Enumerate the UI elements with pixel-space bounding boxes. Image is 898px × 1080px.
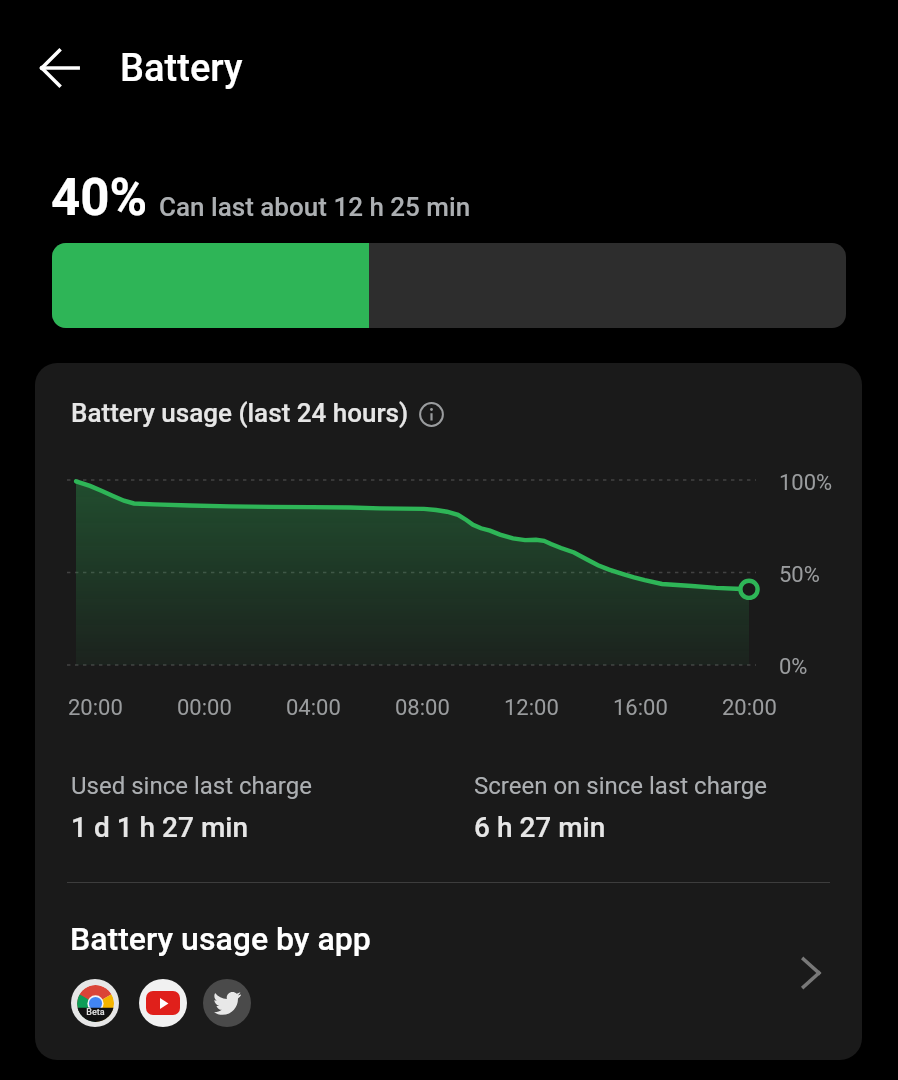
staticText: Screen on since last charge bbox=[474, 772, 768, 800]
staticText: 1 d 1 h 27 min bbox=[71, 811, 248, 844]
staticText: 12:00 bbox=[504, 695, 559, 721]
staticText: Battery usage by app bbox=[70, 920, 371, 958]
staticText: Can last about 12 h 25 min bbox=[159, 192, 471, 222]
staticText: 20:00 bbox=[68, 695, 123, 721]
staticText: 6 h 27 min bbox=[474, 811, 606, 844]
staticText: 08:00 bbox=[395, 695, 450, 721]
staticText: 16:00 bbox=[613, 695, 668, 721]
staticText: 0% bbox=[779, 654, 808, 680]
staticText: 04:00 bbox=[286, 695, 341, 721]
staticText: Battery usage (last 24 hours) bbox=[71, 398, 409, 428]
staticText: Used since last charge bbox=[71, 772, 312, 800]
staticText: 40% bbox=[51, 168, 148, 228]
staticText: 20:00 bbox=[722, 695, 777, 721]
staticText: 00:00 bbox=[177, 695, 232, 721]
button[interactable]: Battery usage by app bbox=[35, 883, 862, 1053]
staticText: Beta bbox=[77, 1007, 114, 1018]
staticText: Battery bbox=[120, 46, 243, 91]
button[interactable]: Back bbox=[19, 27, 101, 109]
staticText: 50% bbox=[779, 562, 820, 588]
button[interactable]: Info bbox=[414, 397, 448, 431]
staticText: 100% bbox=[779, 470, 833, 496]
